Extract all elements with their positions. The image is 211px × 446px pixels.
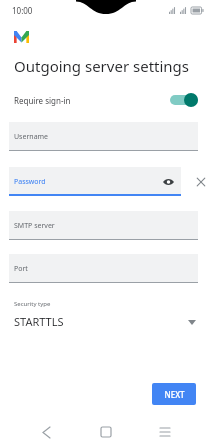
button[interactable]: Username [9,122,198,151]
button[interactable]: SMTP server [9,211,198,240]
staticText: Port [14,264,28,274]
button[interactable]: Home [93,419,119,445]
button[interactable]: Back [33,419,59,445]
button[interactable]: Require sign-in [0,89,211,111]
staticText: 10:00 [12,5,33,16]
staticText: Outgoing server settings [14,56,190,76]
staticText: SMTP server [14,221,55,231]
button[interactable]: Security type [0,300,211,329]
button[interactable]: Show password [162,175,175,188]
staticText: Username [14,132,49,142]
button[interactable]: Password [9,167,181,196]
other: Open security type menu [186,316,198,328]
staticText: NEXT [164,389,185,400]
staticText: Security type [14,300,51,308]
button[interactable]: NEXT [152,383,196,405]
button[interactable]: Recent apps [152,419,178,445]
button[interactable]: Port [9,254,198,283]
staticText: STARTTLS [14,314,64,329]
staticText: Require sign-in [14,95,71,106]
button[interactable]: Require sign-in toggle [170,93,198,107]
button[interactable]: Clear password [190,167,211,196]
staticText: Password [14,177,46,187]
